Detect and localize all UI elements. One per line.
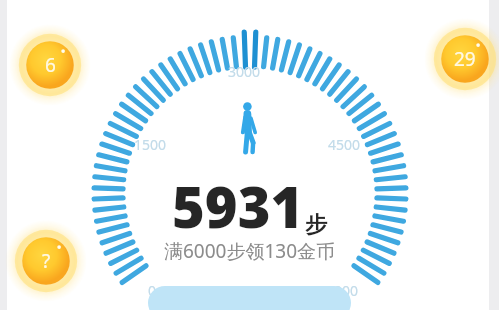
staticText: 3000 bbox=[228, 62, 261, 81]
staticText: 0 bbox=[148, 281, 157, 300]
staticText: 5931 bbox=[172, 168, 304, 244]
staticText: 29 bbox=[454, 46, 476, 72]
staticText: 6000 bbox=[326, 281, 359, 300]
staticText: 步 bbox=[305, 211, 327, 239]
staticText: 满6000步领130金币 bbox=[0, 238, 499, 264]
staticText: 4500 bbox=[328, 135, 361, 154]
button[interactable]: Coin 29 bbox=[424, 18, 499, 100]
staticText: ? bbox=[42, 248, 51, 274]
staticText: 1500 bbox=[134, 135, 167, 154]
other: Walking bbox=[237, 100, 263, 156]
button[interactable]: Coin 6 bbox=[9, 24, 91, 106]
staticText: 6 bbox=[45, 52, 56, 78]
button[interactable] bbox=[148, 286, 351, 310]
button[interactable]: Coin ? bbox=[5, 220, 87, 302]
